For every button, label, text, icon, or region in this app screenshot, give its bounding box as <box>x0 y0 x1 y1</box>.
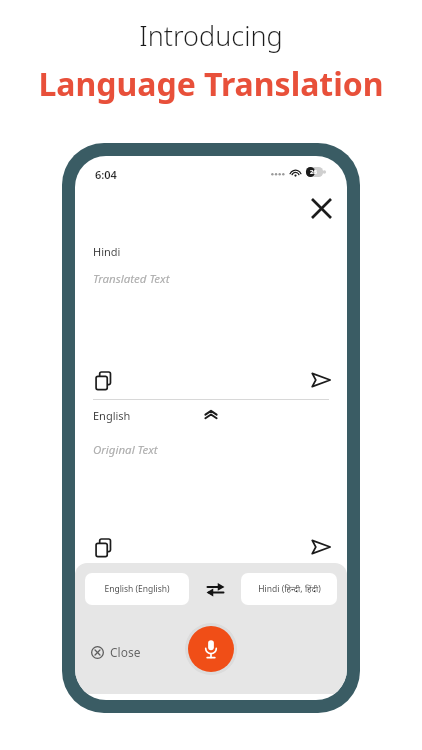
staticText: Original Text <box>93 442 158 458</box>
button[interactable]: Hindi (हिन्दी, हिंदी) <box>241 573 337 605</box>
button[interactable]: Start voice input <box>188 626 234 672</box>
button[interactable]: Close <box>303 190 339 226</box>
staticText: Introducing <box>139 17 283 54</box>
button[interactable]: Expand <box>195 399 227 431</box>
staticText: Close <box>110 644 141 660</box>
button[interactable]: Close <box>89 641 143 663</box>
button[interactable]: Send translated text <box>303 362 339 398</box>
button[interactable]: Send original text <box>303 529 339 565</box>
button[interactable]: Copy translated text <box>87 364 121 398</box>
staticText: Hindi <box>93 244 121 259</box>
button[interactable]: Swap languages <box>199 573 231 605</box>
staticText: 6:04 <box>95 167 117 182</box>
staticText: English <box>93 408 131 423</box>
staticText: English (English) <box>104 583 170 595</box>
button[interactable]: English (English) <box>85 573 189 605</box>
staticText: Translated Text <box>93 271 170 287</box>
staticText: Language Translation <box>38 62 384 106</box>
staticText: 26 <box>310 168 317 176</box>
staticText: Hindi (हिन्दी, हिंदी) <box>258 583 321 595</box>
button[interactable]: Copy original text <box>87 531 121 565</box>
